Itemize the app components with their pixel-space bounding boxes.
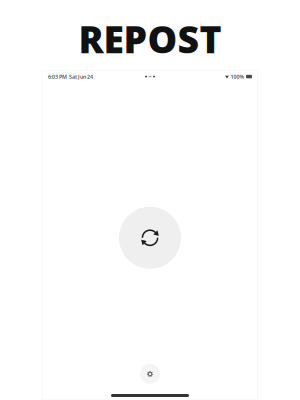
staticText: REPOST [78, 14, 221, 64]
button[interactable]: Settings [140, 364, 160, 384]
staticText: 6:03 PM Sat Jun 24 [48, 73, 93, 80]
button[interactable]: Repost [119, 207, 181, 269]
staticText: 100% [230, 73, 244, 80]
